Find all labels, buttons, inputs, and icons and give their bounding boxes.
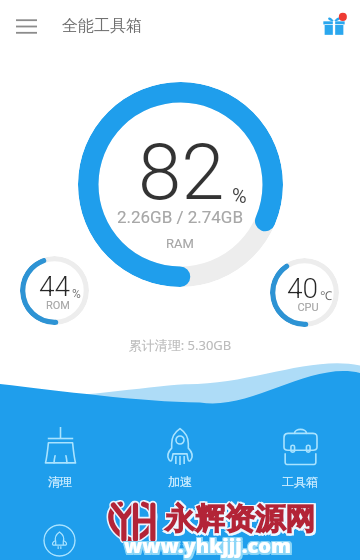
staticText: % — [72, 287, 81, 301]
button[interactable]: 工具箱 — [240, 426, 360, 489]
staticText: 2.26GB / 2.74GB — [0, 207, 360, 227]
staticText: CPU — [297, 301, 319, 314]
staticText: 永辉资源网 — [164, 502, 314, 540]
staticText: 永辉资源网 — [164, 500, 314, 538]
staticText: www.yhkjjj.com — [126, 534, 294, 560]
button[interactable]: 加速 — [120, 426, 240, 489]
staticText: www.yhkjjj.com — [123, 532, 291, 559]
staticText: www.yhkjjj.com — [123, 534, 291, 560]
button[interactable]: ROM — [20, 256, 89, 325]
button[interactable]: Gifts — [308, 0, 360, 52]
staticText: 永辉资源网 — [165, 500, 315, 538]
staticText: 加速 — [168, 474, 192, 489]
staticText: ROM — [46, 299, 70, 312]
staticText: RAM — [0, 236, 360, 251]
staticText: 累计清理: 5.30GB — [0, 336, 360, 354]
staticText: www.yhkjjj.com — [126, 532, 294, 559]
staticText: 清理 — [48, 474, 72, 489]
button[interactable]: Menu — [0, 0, 52, 52]
staticText: www.yhkjjj.com — [124, 532, 292, 559]
button[interactable]: CPU — [270, 258, 339, 327]
button[interactable]: 清理 — [0, 426, 120, 489]
button[interactable]: Boost — [43, 524, 76, 557]
staticText: 永辉资源网 — [165, 502, 315, 540]
staticText: 全能工具箱 — [62, 16, 142, 36]
staticText: 永辉资源网 — [167, 500, 317, 538]
staticText: www.yhkjjj.com — [124, 534, 292, 560]
staticText: www.yhkjjj.com — [123, 531, 291, 558]
staticText: 永辉资源网 — [164, 499, 314, 537]
staticText: 40 — [287, 272, 319, 305]
staticText: www.yhkjjj.com — [126, 531, 294, 558]
button[interactable]: RAM usage — [78, 82, 283, 287]
staticText: 44 — [39, 270, 71, 303]
staticText: ℃ — [320, 287, 332, 303]
staticText: 永辉资源网 — [167, 499, 317, 537]
staticText: 永辉资源网 — [167, 502, 317, 540]
staticText: 82 — [138, 127, 225, 218]
staticText: 永辉资源网 — [165, 499, 315, 537]
staticText: % — [232, 184, 247, 207]
staticText: www.yhkjjj.com — [124, 531, 292, 558]
staticText: 工具箱 — [282, 474, 318, 489]
